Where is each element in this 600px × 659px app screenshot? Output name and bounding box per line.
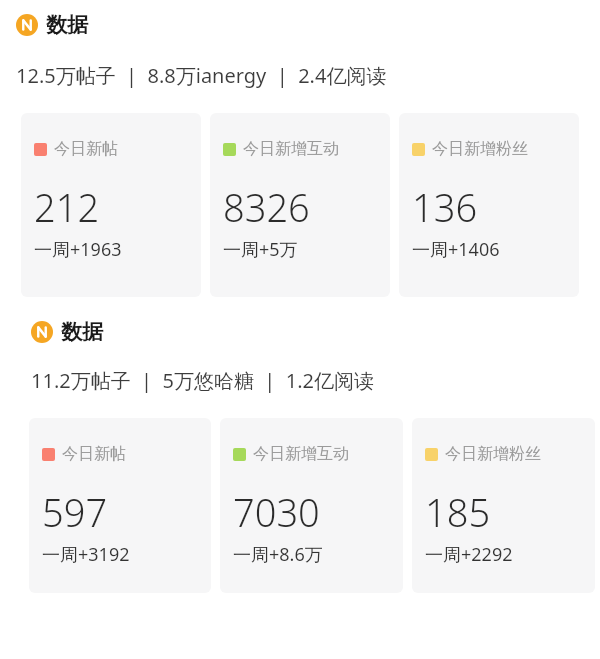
staticText: 一周+8.6万 bbox=[233, 542, 323, 567]
staticText: 一周+2292 bbox=[425, 542, 513, 567]
staticText: 597 bbox=[42, 486, 108, 538]
button[interactable]: 今日新增粉丝 bbox=[399, 113, 579, 297]
button[interactable]: 今日新帖 bbox=[29, 418, 211, 593]
staticText: 8326 bbox=[223, 181, 310, 233]
staticText: 今日新帖 bbox=[54, 139, 118, 159]
staticText: 今日新增粉丝 bbox=[445, 444, 541, 464]
button[interactable]: App badge bbox=[0, 12, 600, 38]
staticText: 数据 bbox=[61, 319, 103, 345]
staticText: 7030 bbox=[233, 486, 320, 538]
staticText: 一周+5万 bbox=[223, 237, 298, 262]
staticText: 今日新增互动 bbox=[243, 139, 339, 159]
button[interactable]: 今日新增互动 bbox=[210, 113, 390, 297]
button[interactable]: 今日新增粉丝 bbox=[412, 418, 595, 593]
other: App badge bbox=[16, 14, 38, 36]
staticText: 一周+3192 bbox=[42, 542, 130, 567]
staticText: 212 bbox=[34, 181, 100, 233]
staticText: 136 bbox=[412, 181, 478, 233]
staticText: 今日新增互动 bbox=[253, 444, 349, 464]
other: App badge bbox=[31, 321, 53, 343]
staticText: 185 bbox=[425, 486, 491, 538]
staticText: 今日新帖 bbox=[62, 444, 126, 464]
staticText: 一周+1963 bbox=[34, 237, 122, 262]
button[interactable]: App badge bbox=[0, 319, 600, 345]
staticText: 12.5万帖子 | 8.8万ianergy | 2.4亿阅读 bbox=[16, 62, 387, 89]
staticText: 数据 bbox=[46, 12, 88, 38]
button[interactable]: 今日新帖 bbox=[21, 113, 201, 297]
button[interactable]: 今日新增互动 bbox=[220, 418, 403, 593]
staticText: 一周+1406 bbox=[412, 237, 500, 262]
staticText: 11.2万帖子 | 5万悠哈糖 | 1.2亿阅读 bbox=[31, 367, 374, 394]
staticText: 今日新增粉丝 bbox=[432, 139, 528, 159]
